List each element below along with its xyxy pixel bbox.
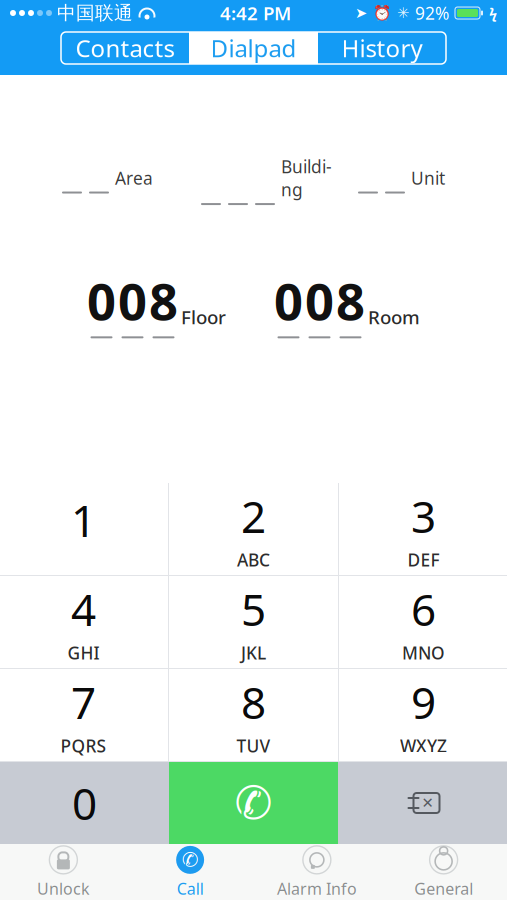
button[interactable]: 2	[169, 483, 338, 575]
staticText: Floor	[181, 304, 226, 329]
staticText: ✆	[234, 777, 272, 829]
button[interactable]: ✆	[127, 846, 254, 898]
button[interactable]: 5	[169, 576, 338, 668]
staticText: Area	[115, 166, 153, 189]
staticText: TUV	[236, 734, 270, 757]
button[interactable]: 9	[339, 669, 507, 761]
staticText: ⏰	[373, 5, 391, 21]
staticText: GHI	[67, 641, 99, 664]
button[interactable]: 8	[169, 669, 338, 761]
button[interactable]: 3	[339, 483, 507, 575]
staticText: 0	[87, 267, 116, 334]
button[interactable]: 6	[339, 576, 507, 668]
staticText: Contacts	[75, 32, 174, 64]
staticText: 0	[305, 267, 334, 334]
button[interactable]: Contacts	[61, 32, 189, 64]
staticText: Unit	[411, 166, 445, 189]
button[interactable]: 1	[0, 483, 168, 575]
staticText: ϟ	[489, 3, 497, 23]
staticText: General	[414, 878, 473, 899]
staticText: 9	[411, 673, 436, 731]
staticText: 3	[411, 487, 436, 545]
staticText: 0	[118, 267, 147, 334]
staticText: 0	[274, 267, 303, 334]
staticText: 92%	[415, 1, 449, 24]
staticText: 6	[411, 580, 436, 638]
staticText: History	[341, 32, 422, 64]
staticText: PQRS	[60, 734, 106, 757]
button[interactable]: 0	[0, 762, 169, 844]
staticText: 7	[71, 673, 96, 731]
button[interactable]: 7	[0, 669, 168, 761]
staticText: Call	[177, 878, 204, 899]
staticText: Dialpad	[210, 32, 296, 64]
staticText: WXYZ	[400, 734, 447, 757]
staticText: JKL	[241, 641, 266, 664]
button[interactable]: Call	[169, 762, 338, 844]
button[interactable]: Unlock	[0, 846, 127, 898]
staticText: 8	[336, 267, 365, 334]
staticText: ➤	[355, 5, 367, 21]
button[interactable]: Dialpad	[189, 32, 318, 64]
button[interactable]: General	[380, 846, 507, 898]
staticText: Unlock	[37, 878, 90, 899]
staticText: 2	[241, 487, 266, 545]
staticText: MNO	[402, 641, 445, 664]
staticText: ABC	[237, 548, 270, 571]
staticText: ✕	[421, 795, 433, 811]
staticText: Building	[281, 155, 332, 201]
staticText: Room	[368, 304, 420, 329]
staticText: 8	[149, 267, 178, 334]
staticText: 中国联通	[57, 1, 133, 24]
button[interactable]: Alarm Info	[253, 846, 380, 898]
staticText: 1	[71, 491, 96, 549]
button[interactable]: 4	[0, 576, 168, 668]
staticText: 8	[241, 673, 266, 731]
staticText: DEF	[407, 548, 439, 571]
button[interactable]: Delete	[338, 762, 507, 844]
button[interactable]: History	[318, 32, 446, 64]
staticText: Alarm Info	[277, 878, 357, 899]
staticText: 0	[72, 774, 97, 832]
staticText: ✆	[182, 848, 199, 871]
staticText: 4	[71, 580, 96, 638]
staticText: 4:42 PM	[220, 1, 291, 25]
staticText: ✳	[397, 5, 409, 21]
staticText: 5	[241, 580, 266, 638]
